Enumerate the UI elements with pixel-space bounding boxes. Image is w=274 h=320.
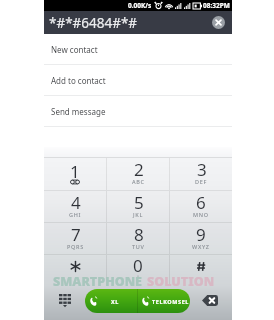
staticText: ABC <box>132 178 145 185</box>
staticText: XL <box>111 298 119 305</box>
staticText: + <box>136 273 141 281</box>
button[interactable]: XL <box>85 289 137 313</box>
staticText: 9 <box>196 223 206 246</box>
button[interactable] <box>170 255 232 286</box>
staticText: SMARTPHONE <box>53 273 142 290</box>
button[interactable]: 7 <box>44 223 106 254</box>
button[interactable]: Backspace <box>196 287 224 313</box>
staticText: Add to contact <box>51 75 106 86</box>
button[interactable]: 3 <box>170 158 232 190</box>
staticText: WXYZ <box>192 243 210 250</box>
staticText: JKL <box>133 211 144 218</box>
button[interactable]: Add to contact <box>44 65 232 95</box>
staticText: 8 <box>134 223 144 246</box>
staticText: Send message <box>51 106 106 117</box>
button[interactable]: New contact <box>44 34 232 64</box>
button[interactable]: 1 <box>44 158 106 190</box>
staticText: PQRS <box>67 243 84 250</box>
staticText: TELKOMSEL <box>152 298 189 305</box>
staticText: 7 <box>71 223 81 246</box>
button[interactable]: 4 <box>44 191 106 222</box>
button[interactable]: TELKOMSEL <box>138 289 190 313</box>
staticText: 0.00K/s <box>128 1 152 10</box>
staticText: SOLUTION <box>147 273 215 290</box>
staticText: 1 <box>70 160 80 183</box>
staticText: 5 <box>134 191 144 214</box>
button[interactable]: 0 <box>107 255 169 286</box>
staticText: 0 <box>133 254 143 277</box>
staticText: TUV <box>132 243 145 250</box>
button[interactable]: Clear number <box>212 16 225 29</box>
button[interactable]: 5 <box>107 191 169 222</box>
button[interactable]: 2 <box>107 158 169 190</box>
button[interactable]: Send message <box>44 96 232 126</box>
staticText: MNO <box>193 211 209 218</box>
staticText: 2 <box>134 158 144 181</box>
staticText: 08:32PM <box>203 1 230 10</box>
button[interactable]: 8 <box>107 223 169 254</box>
staticText: GHI <box>69 211 82 218</box>
button[interactable] <box>44 255 106 286</box>
staticText: DEF <box>195 178 208 185</box>
button[interactable]: 9 <box>170 223 232 254</box>
staticText: 3 <box>197 158 207 181</box>
button[interactable]: 6 <box>170 191 232 222</box>
staticText: 6 <box>196 191 206 214</box>
staticText: *#*#6484#*# <box>49 14 138 32</box>
button[interactable]: Show dialpad <box>51 286 79 314</box>
staticText: 4 <box>71 191 81 214</box>
staticText: New contact <box>51 44 98 55</box>
